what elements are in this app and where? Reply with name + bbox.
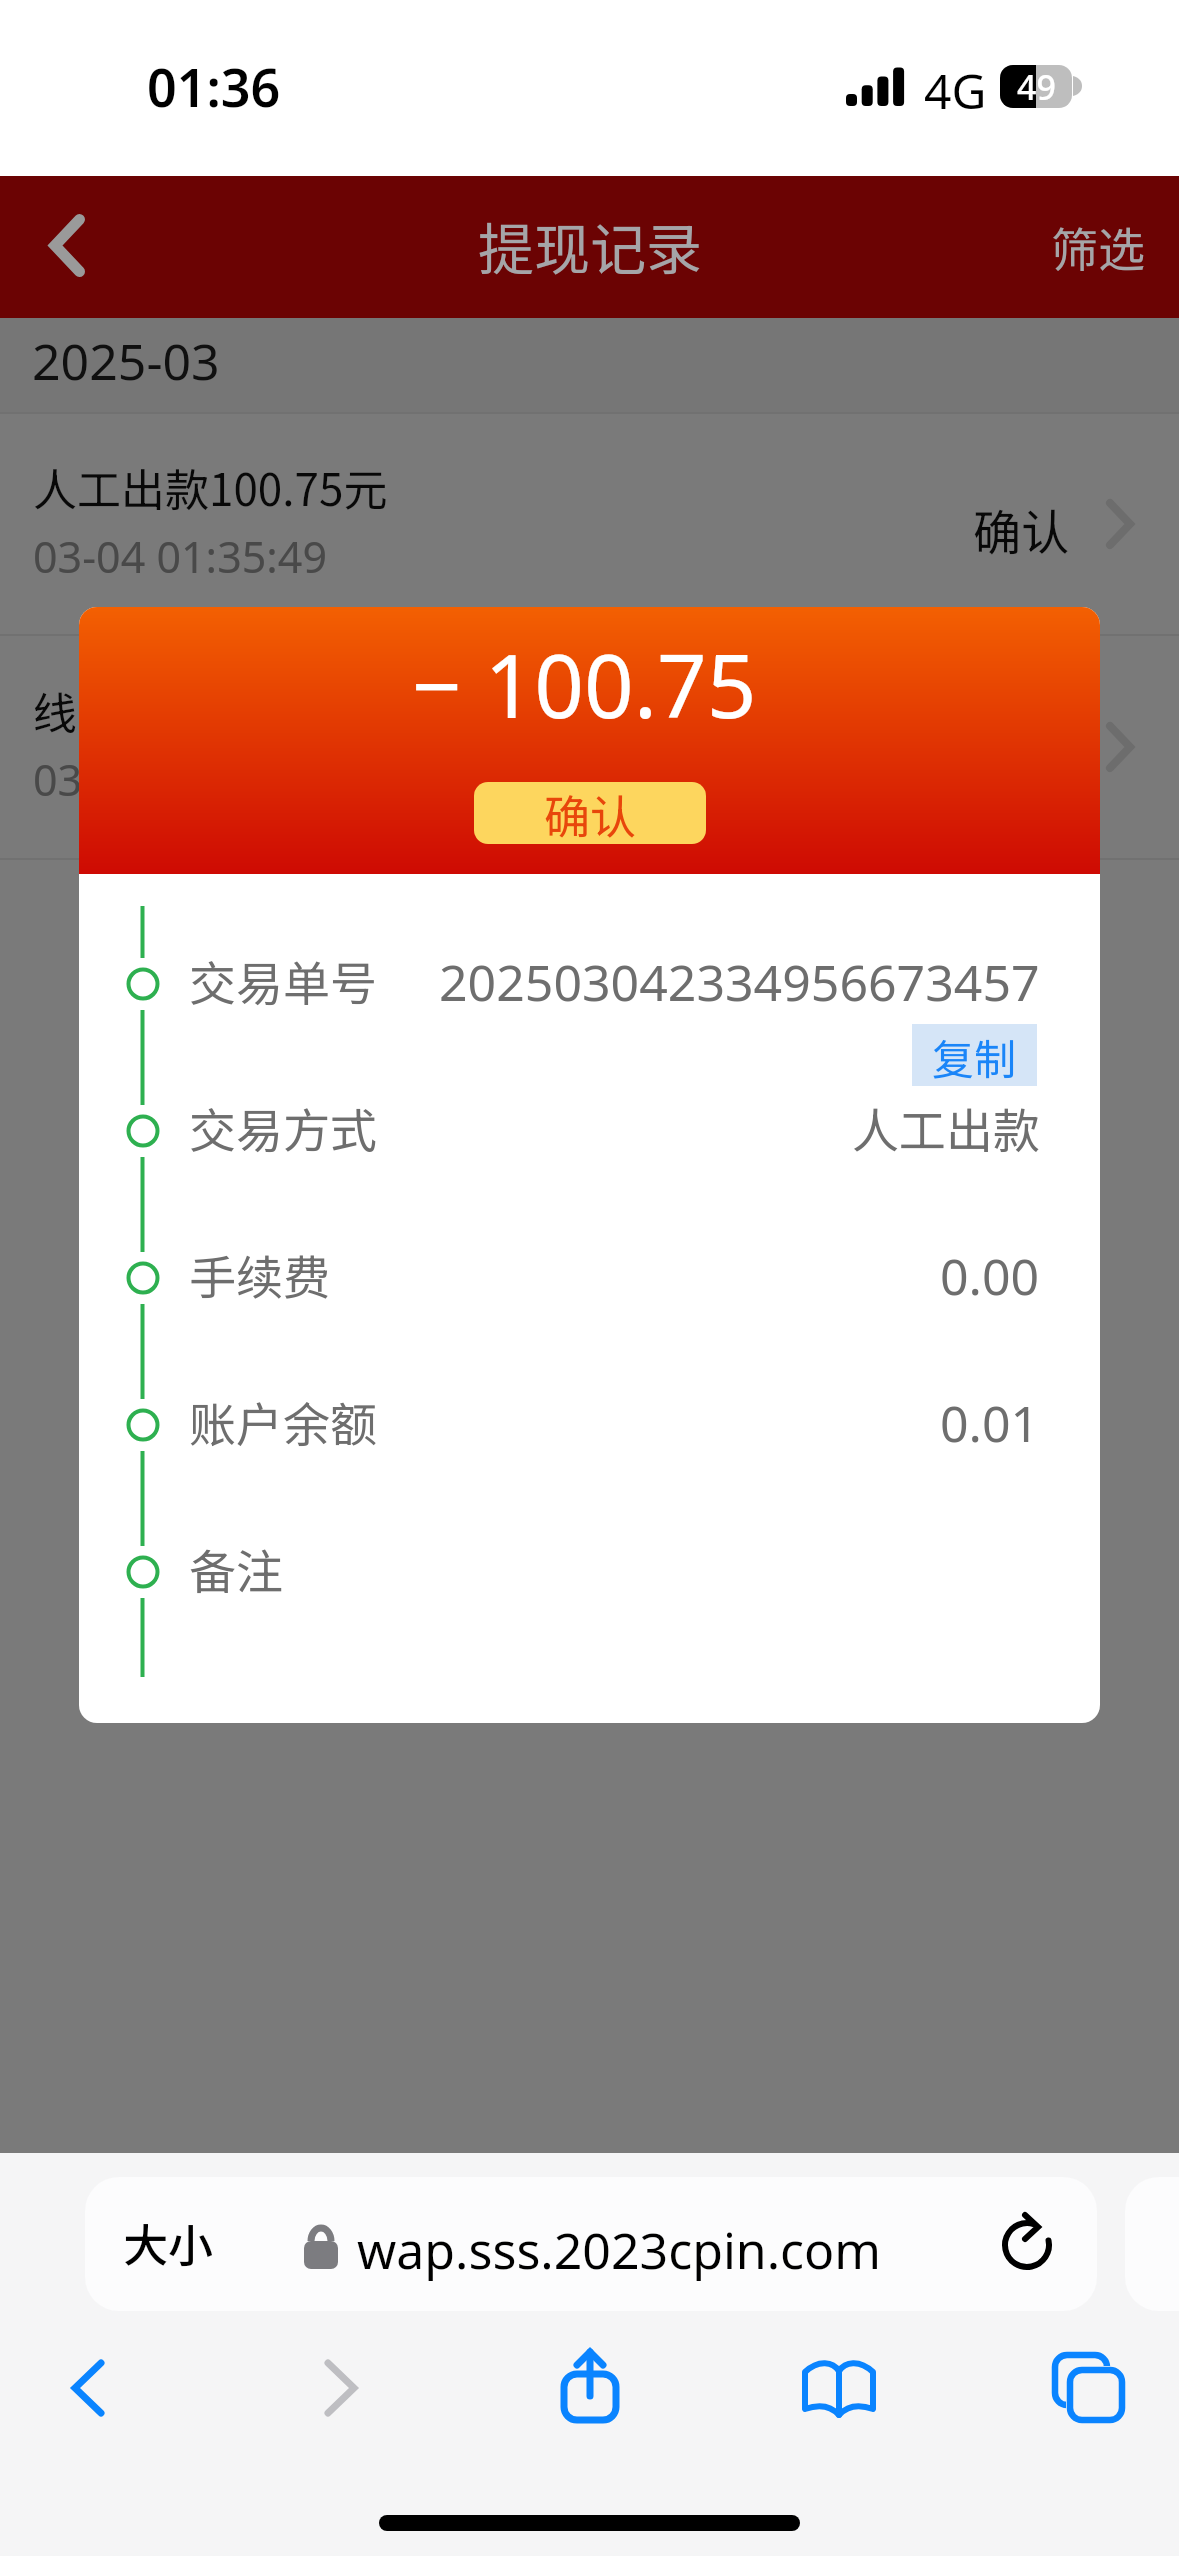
staticText: 备注	[189, 1534, 283, 1602]
button[interactable]: Bookmarks	[774, 2321, 904, 2451]
button[interactable]: 复制	[912, 1024, 1037, 1086]
staticText: 手续费	[189, 1240, 330, 1308]
staticText: 03-04 01:35:49	[33, 527, 328, 586]
staticText: 03-03 23:47:12	[33, 750, 328, 809]
staticText: 交易方式	[189, 1093, 377, 1161]
staticText: 账户余额	[189, 1387, 377, 1455]
staticText: 交易单号	[189, 946, 377, 1014]
button[interactable]: 人工出款100.75元	[0, 414, 1179, 634]
staticText: 人工出款100.75元	[33, 455, 388, 519]
staticText: 0.00	[940, 1242, 1040, 1310]
button[interactable]: 确认	[474, 782, 706, 844]
staticText: 202503042334956673457	[439, 948, 1040, 1016]
button[interactable]: Back	[22, 2321, 152, 2451]
staticText: 0.01	[940, 1389, 1040, 1457]
staticText: 大小	[123, 2210, 214, 2275]
staticText: 线下入款5000.00元	[33, 678, 412, 742]
staticText: 复制	[932, 1026, 1017, 1087]
button[interactable]: 线下入款5000.00元	[0, 636, 1179, 858]
staticText: 确认	[544, 782, 636, 843]
staticText: 4G	[924, 58, 987, 123]
button[interactable]: Share	[525, 2321, 655, 2451]
staticText: 人工出款	[852, 1093, 1040, 1161]
staticText: 确认	[973, 494, 1070, 564]
button[interactable]: Back	[10, 176, 120, 318]
staticText: 提现记录	[478, 205, 702, 286]
button[interactable]: Reload	[964, 2177, 1090, 2311]
staticText: wap.sss.2023cpin.com	[357, 2216, 882, 2284]
staticText: − 100.75	[412, 625, 757, 743]
staticText: 01:36	[147, 51, 281, 122]
button[interactable]: Forward	[277, 2321, 407, 2451]
staticText: 确认	[973, 717, 1070, 787]
button[interactable]: 大小	[85, 2177, 1097, 2311]
button[interactable]: Tabs	[1024, 2321, 1154, 2451]
staticText: 2025-03	[32, 327, 220, 395]
button[interactable]: 筛选	[1019, 176, 1179, 318]
staticText: 49	[1017, 65, 1056, 107]
staticText: 筛选	[1051, 212, 1145, 280]
